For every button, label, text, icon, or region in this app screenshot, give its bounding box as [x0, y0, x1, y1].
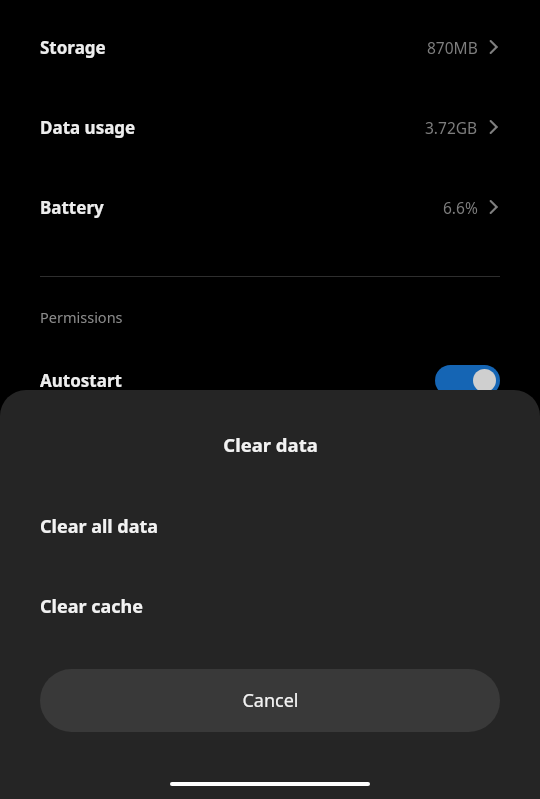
button[interactable]: Storage — [0, 7, 540, 87]
button[interactable]: Autostart — [0, 354, 540, 406]
staticText: Cancel — [242, 688, 299, 713]
staticText: Battery — [40, 196, 104, 219]
staticText: Clear all data — [40, 514, 159, 539]
staticText: 3.72GB — [425, 117, 478, 138]
staticText: Autostart — [40, 369, 122, 392]
button[interactable]: Battery — [0, 167, 540, 247]
button[interactable]: Clear all data — [0, 507, 540, 545]
button[interactable]: Cancel — [40, 669, 500, 732]
staticText: 870MB — [427, 37, 478, 58]
staticText: Data usage — [40, 116, 136, 139]
staticText: Clear cache — [40, 594, 143, 619]
button[interactable]: Clear cache — [0, 587, 540, 625]
staticText: Permissions — [40, 307, 123, 327]
button[interactable]: Data usage — [0, 87, 540, 167]
staticText: Clear data — [223, 432, 318, 457]
staticText: 6.6% — [443, 197, 478, 218]
staticText: Storage — [40, 36, 106, 59]
other: Autostart toggle — [435, 365, 500, 396]
